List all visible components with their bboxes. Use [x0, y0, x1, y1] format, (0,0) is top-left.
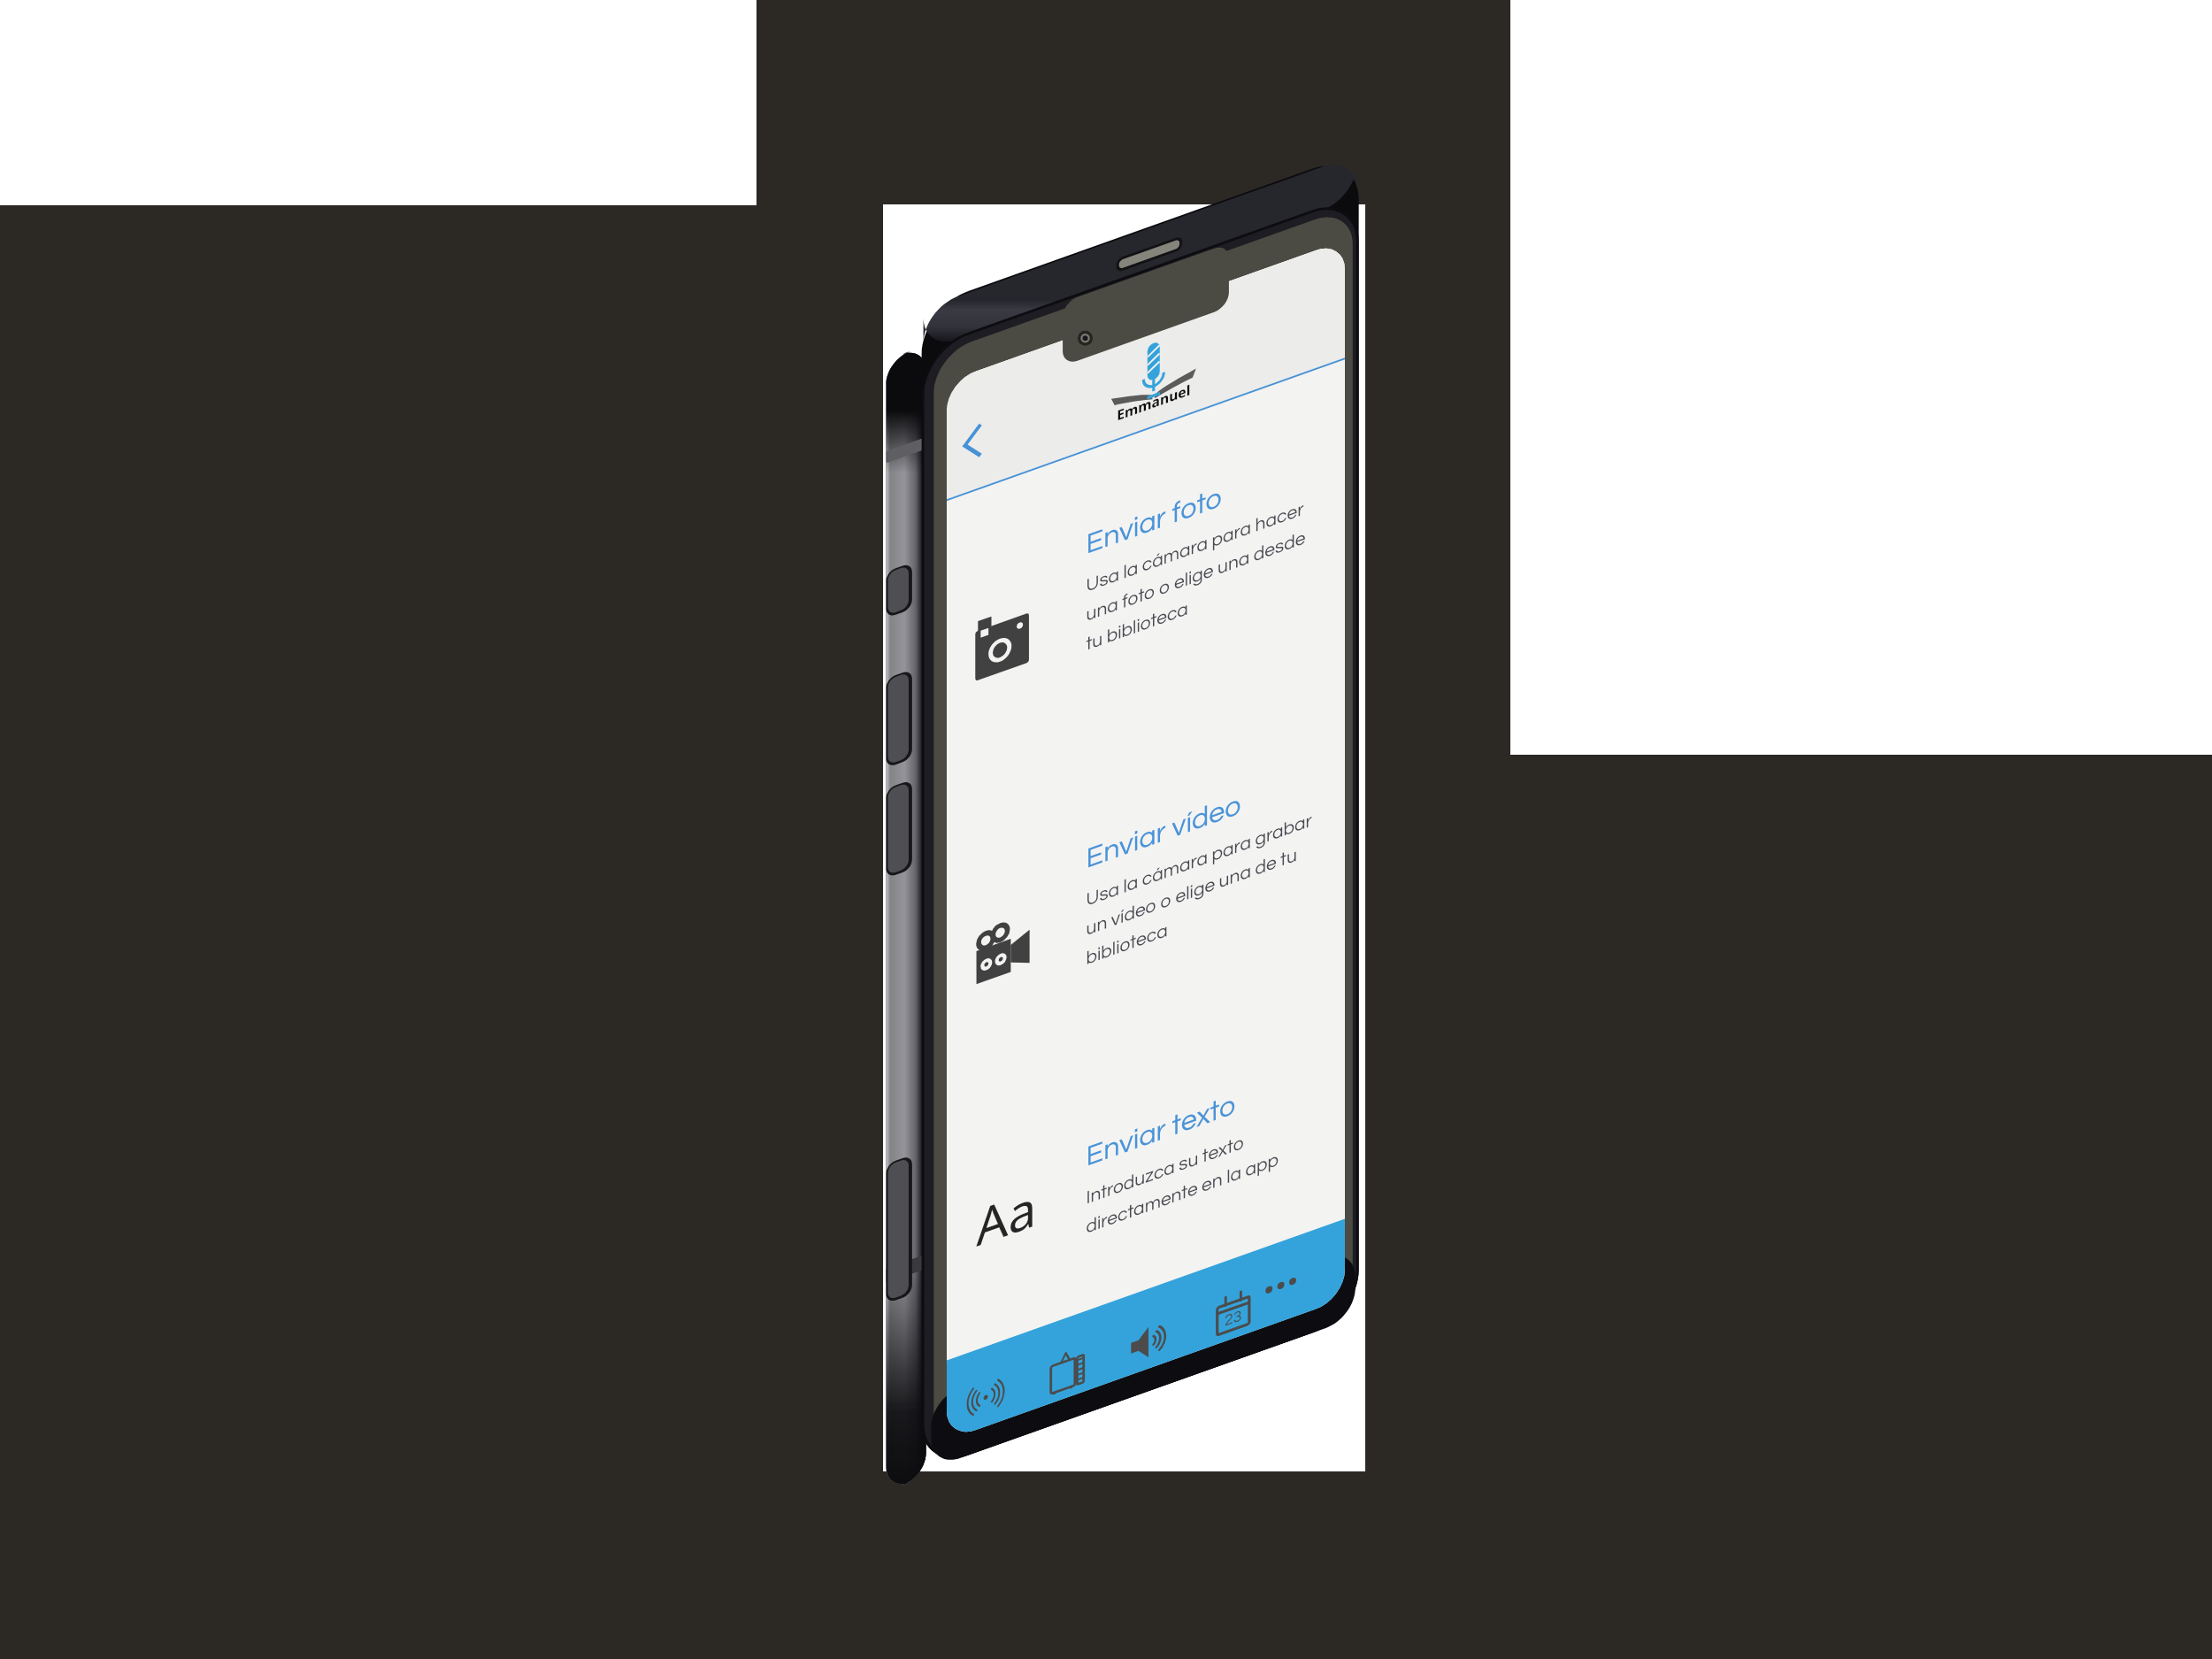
button[interactable]: Enviar foto: [142, 204, 404, 332]
staticText: Enviar foto: [142, 204, 281, 234]
